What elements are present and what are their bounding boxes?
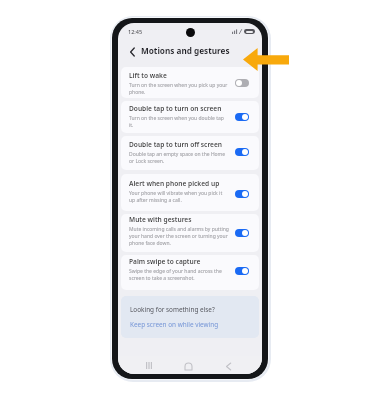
- button[interactable]: Switch on: [235, 229, 249, 237]
- staticText: it.: [129, 122, 134, 129]
- staticText: your hand over the screen or turning you…: [129, 233, 228, 240]
- button[interactable]: Switch off: [235, 79, 249, 87]
- staticText: up after missing a call.: [129, 197, 182, 204]
- button[interactable]: Switch on: [235, 113, 249, 121]
- staticText: Your phone will vibrate when you pick it: [129, 190, 223, 197]
- staticText: 12:45: [128, 28, 143, 35]
- button[interactable]: Palm swipe to capture: [121, 255, 259, 290]
- staticText: Swipe the edge of your hand across the: [129, 268, 222, 275]
- staticText: Double tap to turn on screen: [129, 104, 222, 113]
- staticText: Mute incoming calls and alarms by puttin…: [129, 226, 229, 233]
- button[interactable]: Lift to wake: [121, 67, 259, 98]
- staticText: Looking for something else?: [130, 305, 215, 314]
- button[interactable]: Double tap to turn off screen: [121, 136, 259, 170]
- staticText: Double tap an empty space on the Home: [129, 151, 226, 158]
- staticText: or Lock screen.: [129, 158, 165, 165]
- staticText: Motions and gestures: [141, 45, 230, 56]
- button[interactable]: Alert when phone picked up: [121, 174, 259, 211]
- staticText: Turn on the screen when you double tap: [129, 115, 224, 122]
- staticText: screen to take a screenshot.: [129, 275, 195, 282]
- button[interactable]: Switch on: [235, 148, 249, 156]
- staticText: Turn on the screen when you pick up your: [129, 82, 228, 89]
- staticText: Lift to wake: [129, 71, 167, 80]
- staticText: Double tap to turn off screen: [129, 140, 223, 149]
- button[interactable]: Double tap to turn on screen: [121, 101, 259, 133]
- button[interactable]: Keep screen on while viewing: [130, 320, 219, 329]
- button[interactable]: Switch on: [235, 267, 249, 275]
- button[interactable]: Back: [221, 359, 235, 373]
- button[interactable]: Switch on: [235, 190, 249, 198]
- staticText: Palm swipe to capture: [129, 257, 201, 266]
- button[interactable]: Home: [181, 359, 195, 373]
- staticText: phone face down.: [129, 240, 171, 247]
- staticText: Alert when phone picked up: [129, 179, 220, 188]
- button[interactable]: Mute with gestures: [121, 214, 259, 252]
- staticText: Mute with gestures: [129, 215, 192, 224]
- staticText: phone.: [129, 89, 146, 96]
- button[interactable]: Recent apps: [142, 358, 156, 372]
- button[interactable]: Navigate up: [126, 45, 139, 58]
